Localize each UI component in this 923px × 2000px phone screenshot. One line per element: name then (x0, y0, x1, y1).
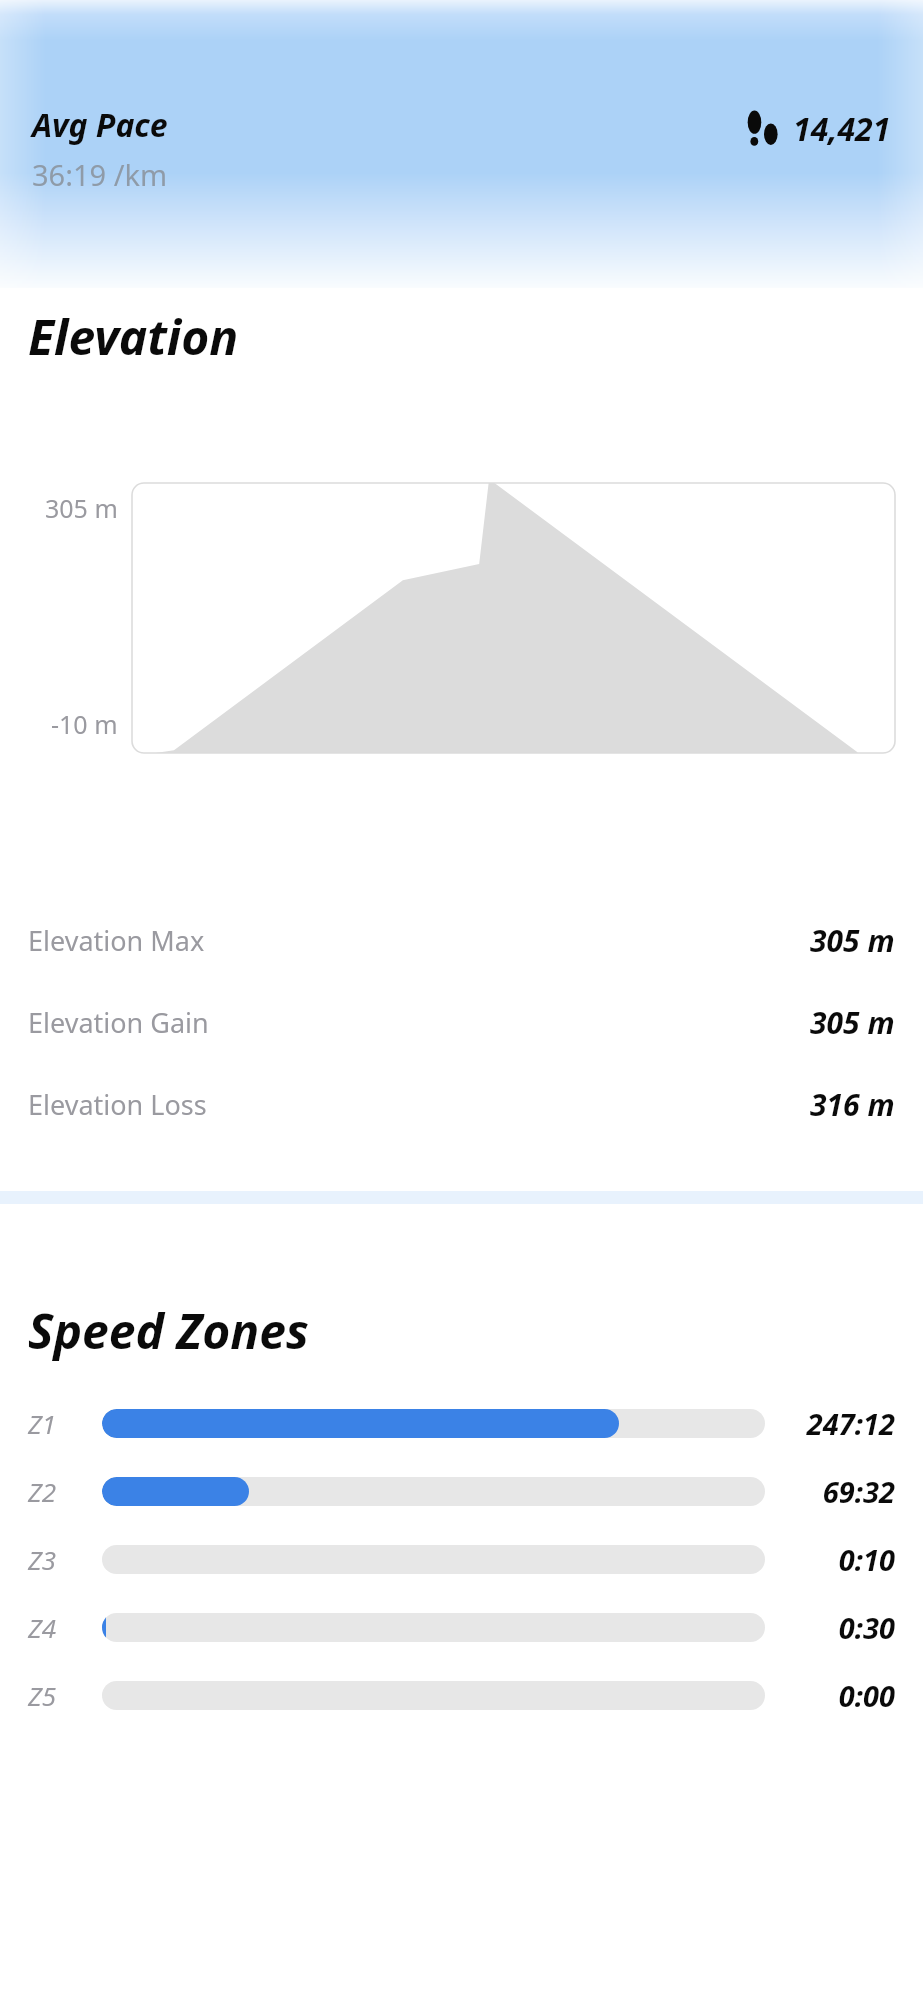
staticText: Speed Zones (28, 1298, 309, 1363)
staticText: 14,421 (793, 107, 891, 151)
staticText: 305 m (810, 1002, 895, 1043)
staticText: 316 m (810, 1084, 895, 1125)
staticText: 247:12 (789, 1404, 895, 1443)
button[interactable]: Avg Pace (0, 103, 923, 194)
staticText: -10 m (51, 707, 118, 741)
button[interactable]: Z5 (0, 1671, 923, 1719)
staticText: 69:32 (789, 1472, 895, 1511)
staticText: Avg Pace (32, 103, 168, 147)
button[interactable]: Z3 (0, 1535, 923, 1583)
staticText: Z5 (28, 1678, 76, 1713)
other: Steps (747, 109, 781, 149)
staticText: 0:00 (789, 1676, 895, 1715)
staticText: Z4 (28, 1610, 76, 1645)
button[interactable]: Elevation Loss (0, 1063, 923, 1145)
button[interactable]: Z2 (0, 1467, 923, 1515)
staticText: 0:30 (789, 1608, 895, 1647)
button[interactable]: Elevation Gain (0, 981, 923, 1063)
staticText: 305 m (45, 491, 118, 525)
staticText: 0:10 (789, 1540, 895, 1579)
staticText: 305 m (810, 920, 895, 961)
staticText: 36:19 /km (32, 155, 168, 194)
staticText: Elevation Loss (28, 1086, 207, 1123)
staticText: Elevation Gain (28, 1004, 209, 1041)
button[interactable]: Z1 (0, 1399, 923, 1447)
staticText: Elevation (28, 304, 239, 369)
staticText: Z3 (28, 1542, 76, 1577)
staticText: Z2 (28, 1474, 76, 1509)
staticText: Elevation Max (28, 922, 205, 959)
button[interactable]: Elevation Max (0, 899, 923, 981)
staticText: Z1 (28, 1406, 76, 1441)
button[interactable]: Z4 (0, 1603, 923, 1651)
